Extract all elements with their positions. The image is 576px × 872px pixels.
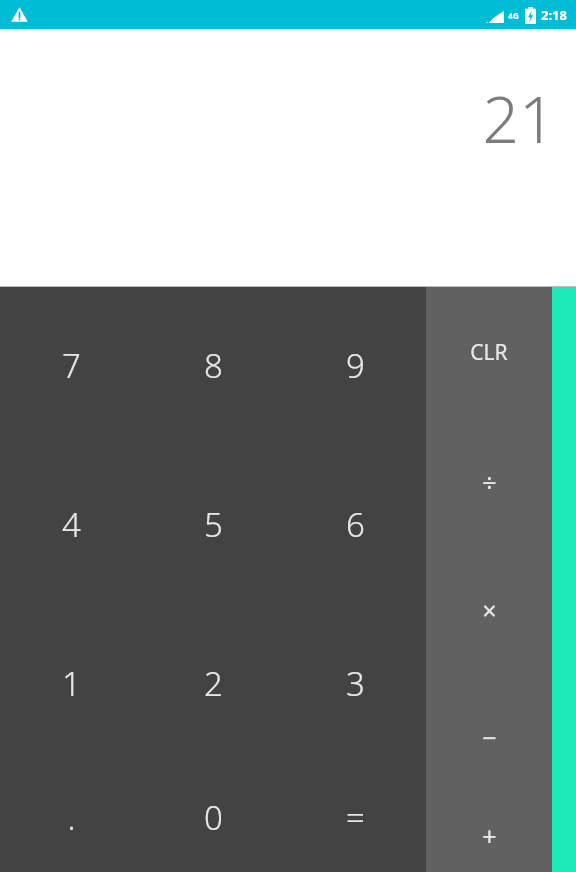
staticText: 5 [204, 502, 223, 547]
staticText: 1 [62, 661, 81, 706]
staticText: = [346, 795, 365, 840]
staticText: 2 [204, 661, 223, 706]
button[interactable]: Add [426, 799, 552, 872]
button[interactable]: 4 [0, 445, 142, 604]
button[interactable]: = [284, 763, 426, 872]
staticText: + [482, 819, 497, 853]
staticText: 0 [204, 795, 223, 840]
button[interactable]: 5 [142, 445, 284, 604]
staticText: . [67, 795, 76, 840]
staticText: − [482, 720, 497, 754]
button[interactable]: 3 [284, 604, 426, 763]
button[interactable]: Accent [552, 286, 576, 872]
staticText: 4 [62, 502, 81, 547]
button[interactable]: . [0, 763, 142, 872]
button[interactable]: Subtract [426, 674, 552, 799]
staticText: 4G [508, 10, 519, 21]
staticText: 9 [346, 343, 365, 388]
staticText: CLR [470, 338, 508, 367]
staticText: × [482, 593, 497, 627]
button[interactable]: 1 [0, 604, 142, 763]
staticText: 7 [62, 343, 81, 388]
staticText: 2:18 [541, 6, 567, 24]
button[interactable]: 6 [284, 445, 426, 604]
button[interactable]: 9 [284, 286, 426, 445]
button[interactable]: Clear [426, 286, 552, 418]
other: Warning [11, 6, 28, 23]
button[interactable]: 2 [142, 604, 284, 763]
staticText: 6 [346, 502, 365, 547]
staticText: 8 [204, 343, 223, 388]
button[interactable]: 7 [0, 286, 142, 445]
staticText: 3 [346, 661, 365, 706]
staticText: ÷ [482, 465, 497, 499]
button[interactable]: Divide [426, 418, 552, 546]
staticText: 21 [482, 75, 556, 162]
button[interactable]: 8 [142, 286, 284, 445]
button[interactable]: Multiply [426, 546, 552, 674]
button[interactable]: 0 [142, 763, 284, 872]
